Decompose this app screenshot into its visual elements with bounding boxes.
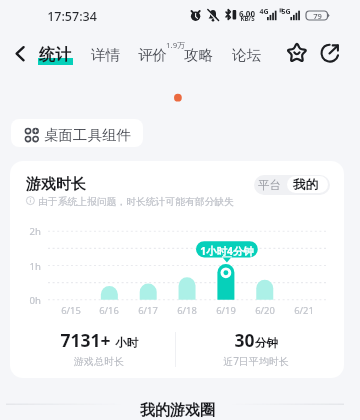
staticText: 6/21 xyxy=(294,304,314,316)
staticText: 6/16 xyxy=(99,304,119,316)
staticText: 论坛 xyxy=(232,46,261,64)
staticText: 6/19 xyxy=(216,304,236,316)
staticText: 7131+ xyxy=(60,328,111,350)
staticText: 1h xyxy=(29,260,41,272)
staticText: 30 xyxy=(234,328,255,350)
staticText: 4G xyxy=(259,7,269,15)
staticText: 我的游戏圈 xyxy=(140,401,215,420)
staticText: 分钟 xyxy=(255,336,278,350)
staticText: 统计 xyxy=(39,45,71,65)
button[interactable]: Favorite xyxy=(284,40,310,66)
staticText: 详情 xyxy=(91,46,120,64)
staticText: 攻略 xyxy=(184,46,213,64)
staticText: 0h xyxy=(29,294,41,306)
staticText: 小时 xyxy=(115,336,138,350)
staticText: 游戏时长 xyxy=(26,175,86,194)
staticText: 由于系统上报问题，时长统计可能有部分缺失 xyxy=(38,196,234,208)
staticText: KB/S xyxy=(240,14,255,22)
staticText: 1.9万 xyxy=(166,40,185,50)
button[interactable]: Share xyxy=(318,40,344,66)
staticText: 6/15 xyxy=(61,304,81,316)
button[interactable]: Back xyxy=(6,40,34,68)
staticText: 2h xyxy=(29,225,41,237)
button[interactable]: 我的游戏圈 xyxy=(0,0,120,22)
staticText: 游戏总时长 xyxy=(74,355,124,368)
staticText: 平台 xyxy=(258,178,281,192)
staticText: 桌面工具组件 xyxy=(44,126,131,144)
staticText: 79 xyxy=(313,11,322,20)
staticText: 6/18 xyxy=(177,304,197,316)
staticText: 我的 xyxy=(293,177,318,193)
staticText: 1小时4分钟 xyxy=(200,244,254,258)
staticText: 6/17 xyxy=(138,304,158,316)
staticText: 评价 xyxy=(138,46,167,64)
button[interactable] xyxy=(11,119,143,147)
staticText: 6.00 xyxy=(239,8,255,17)
staticText: 5G xyxy=(281,7,291,15)
staticText: 17:57:34 xyxy=(47,8,97,25)
staticText: 6/20 xyxy=(255,304,275,316)
staticText: 近7日平均时长 xyxy=(223,354,289,368)
